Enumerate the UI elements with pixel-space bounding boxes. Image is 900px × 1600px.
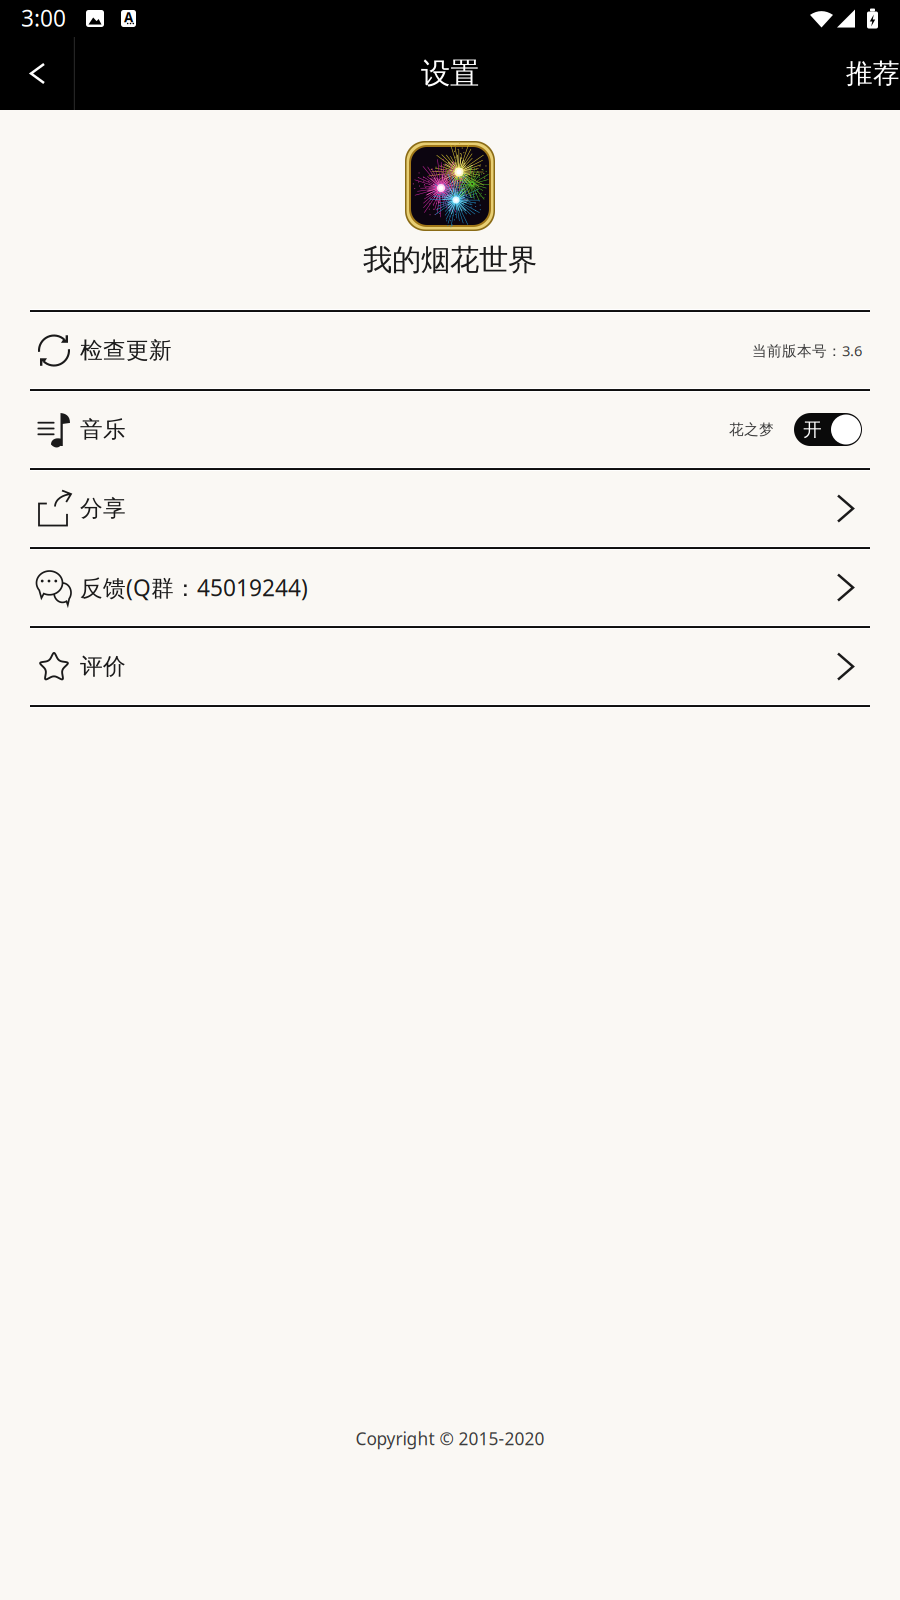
staticText: 评价 — [80, 653, 126, 680]
staticText: 设置 — [421, 55, 479, 91]
staticText: 音乐 — [80, 416, 126, 443]
button[interactable]: 评价 — [0, 629, 900, 704]
staticText: 反馈(Q群：45019244) — [80, 572, 308, 603]
button[interactable]: 推荐 — [846, 37, 900, 110]
staticText: 我的烟花世界 — [363, 242, 537, 278]
staticText: 分享 — [80, 495, 126, 522]
staticText: A — [124, 8, 133, 26]
staticText: 开 — [803, 418, 822, 441]
staticText: 花之梦 — [729, 420, 774, 438]
staticText: 3:00 — [21, 3, 66, 33]
staticText: Copyright © 2015-2020 — [355, 1427, 544, 1450]
button[interactable]: 检查更新 — [0, 313, 900, 388]
button[interactable]: 音乐 — [0, 392, 900, 467]
staticText: 检查更新 — [80, 337, 172, 364]
staticText: 推荐 — [846, 57, 900, 90]
staticText: 当前版本号：3.6 — [752, 341, 862, 360]
button[interactable]: 反馈(Q群：45019244) — [0, 550, 900, 625]
button[interactable]: 返回 — [0, 37, 75, 110]
button[interactable]: 分享 — [0, 471, 900, 546]
